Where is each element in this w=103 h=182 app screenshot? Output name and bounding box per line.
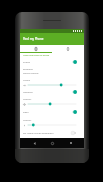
button[interactable]: Flash	[20, 107, 84, 117]
button[interactable]: Back	[29, 138, 39, 148]
button[interactable]: Phone tab	[20, 45, 52, 53]
staticText: Volume	[23, 79, 31, 82]
staticText: When searching for phone	[23, 54, 50, 57]
button[interactable]: Vibration	[20, 88, 84, 96]
button[interactable]: Sound	[20, 58, 84, 66]
button[interactable]: Recents	[66, 138, 76, 148]
button[interactable]: Set Above screen brightness	[20, 128, 84, 138]
staticText: Sound	[23, 61, 71, 64]
button[interactable]: Home	[47, 138, 57, 148]
button[interactable]: Ringtone	[20, 66, 84, 77]
staticText: Set Above screen brightness	[23, 132, 71, 135]
staticText: Find my Phone	[23, 37, 44, 41]
button[interactable]	[28, 102, 76, 106]
staticText: Flash	[23, 111, 71, 114]
staticText: Intensity	[23, 98, 32, 101]
button[interactable]	[28, 123, 76, 127]
staticText: Ringtone	[23, 68, 33, 71]
staticText: Intensity	[23, 119, 32, 122]
staticText: Vibration	[23, 91, 71, 94]
button[interactable]	[28, 83, 76, 87]
staticText: Default ringtone	[23, 72, 39, 75]
button[interactable]: Watch tab	[52, 45, 84, 53]
